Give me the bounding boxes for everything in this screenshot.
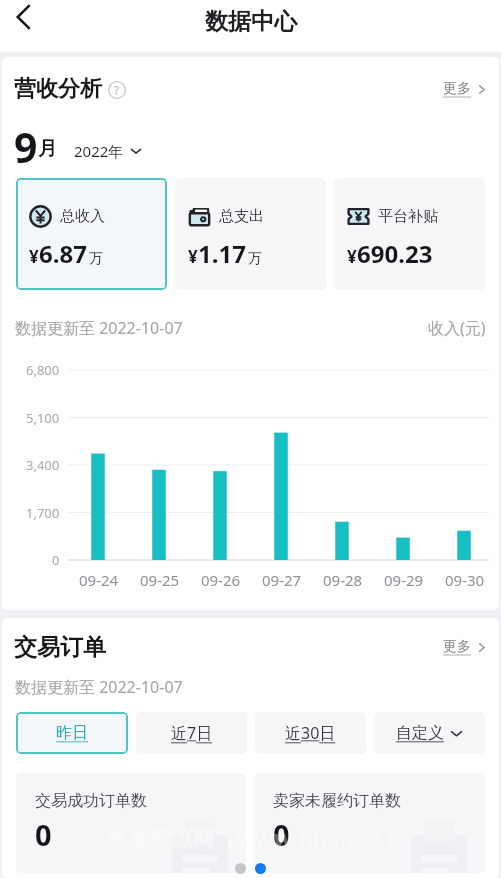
staticText: 昨日 (56, 723, 88, 743)
button[interactable]: 近30日 (255, 712, 366, 754)
staticText: 0 (273, 815, 290, 854)
staticText: 09-29 (384, 570, 424, 590)
staticText: 6,800 (26, 361, 60, 379)
button[interactable]: Back (3, 0, 47, 39)
button[interactable]: 昨日 (16, 712, 128, 754)
staticText: 09-30 (445, 570, 485, 590)
staticText: 近30日 (285, 722, 336, 744)
staticText: 营收分析 (14, 75, 102, 103)
staticText: 09-24 (79, 570, 119, 590)
staticText: 桐县资源网（www.fjha.net） (104, 822, 406, 852)
staticText: 1,700 (26, 504, 60, 522)
button[interactable]: 2022年 (74, 141, 142, 161)
button[interactable]: 近7日 (136, 712, 247, 754)
staticText: 更多 (443, 638, 471, 656)
staticText: 09-25 (140, 570, 180, 590)
button[interactable]: 平台补贴 (334, 178, 485, 290)
staticText: 690.23 (357, 237, 433, 270)
button[interactable]: 总收入 (16, 178, 167, 290)
staticText: ¥ (29, 245, 39, 268)
button[interactable]: 卖家未履约订单数 (254, 773, 485, 873)
staticText: 数据更新至 2022-10-07 (15, 317, 183, 339)
staticText: 5,100 (26, 409, 60, 427)
staticText: 自定义 (396, 723, 444, 743)
staticText: 近7日 (171, 722, 213, 744)
staticText: 09-28 (323, 570, 363, 590)
staticText: 收入(元) (428, 317, 486, 339)
staticText: ¥ (188, 245, 198, 268)
staticText: 09-27 (262, 570, 302, 590)
staticText: 总收入 (60, 207, 105, 226)
staticText: 0 (52, 551, 60, 569)
staticText: ¥ (347, 245, 357, 268)
staticText: 交易订单 (14, 633, 106, 662)
staticText: 更多 (443, 80, 471, 98)
staticText: 万 (89, 250, 103, 268)
button[interactable]: 更多 (443, 638, 488, 656)
staticText: ? (114, 82, 120, 98)
staticText: 万 (248, 250, 262, 268)
staticText: 2022年 (74, 141, 124, 161)
staticText: 平台补贴 (378, 207, 438, 226)
staticText: 6.87 (39, 237, 87, 270)
staticText: 0 (35, 815, 52, 854)
button[interactable]: 更多 (443, 80, 488, 98)
staticText: 数据中心 (205, 7, 297, 36)
button[interactable]: 总支出 (175, 178, 326, 290)
staticText: 卖家未履约订单数 (273, 791, 401, 811)
staticText: 3,400 (26, 456, 60, 474)
staticText: 1.17 (198, 237, 246, 270)
staticText: 9 (14, 119, 38, 165)
staticText: 总支出 (219, 207, 264, 226)
staticText: 数据更新至 2022-10-07 (15, 676, 183, 698)
button[interactable]: 交易成功订单数 (16, 773, 246, 873)
staticText: 09-26 (201, 570, 241, 590)
staticText: 月 (38, 137, 57, 161)
button[interactable]: 自定义 (374, 712, 485, 754)
staticText: 交易成功订单数 (35, 791, 147, 811)
